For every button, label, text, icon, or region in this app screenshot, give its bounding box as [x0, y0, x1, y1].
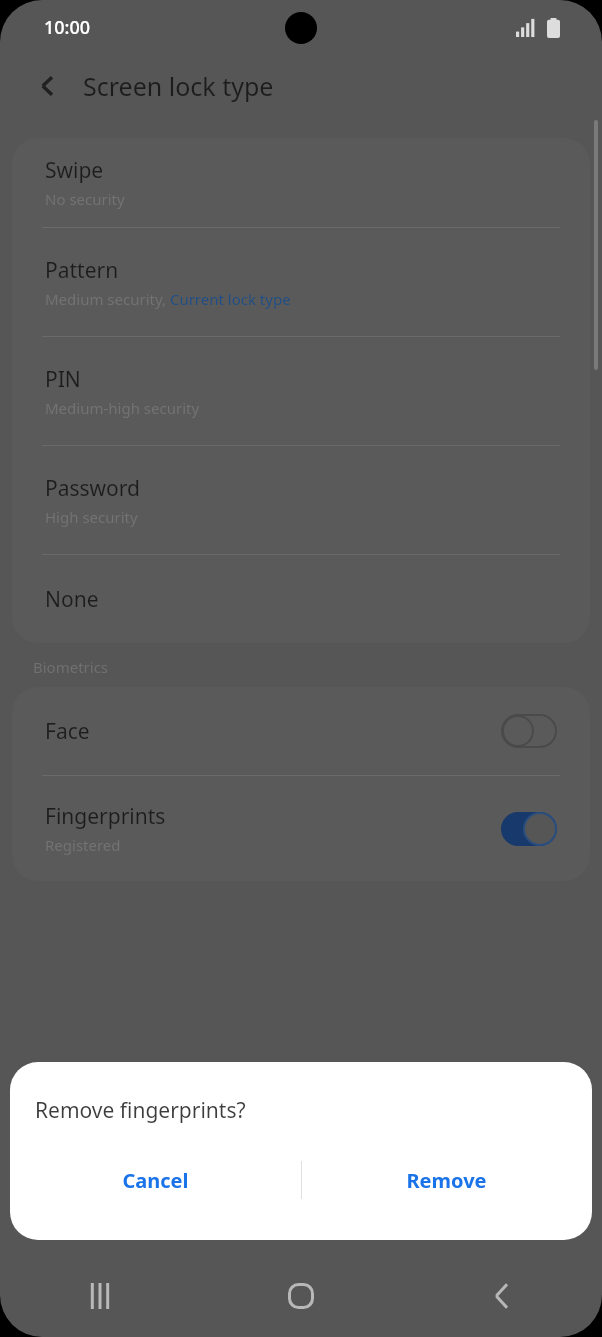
- button[interactable]: Toggle off: [501, 714, 557, 748]
- staticText: Medium security, Current lock type: [45, 289, 291, 309]
- button[interactable]: Home: [200, 1255, 401, 1337]
- button[interactable]: Fingerprints: [12, 776, 590, 881]
- button[interactable]: Swipe: [12, 138, 590, 227]
- staticText: Pattern: [45, 256, 119, 285]
- button[interactable]: Cancel: [10, 1142, 301, 1218]
- button[interactable]: None: [12, 555, 590, 643]
- staticText: Cancel: [122, 1167, 189, 1194]
- staticText: Biometrics: [33, 657, 109, 677]
- button[interactable]: Toggle on: [501, 812, 557, 846]
- button[interactable]: Back: [26, 64, 70, 108]
- staticText: None: [45, 585, 99, 614]
- button[interactable]: PIN: [12, 337, 590, 445]
- button[interactable]: Remove: [301, 1142, 592, 1218]
- staticText: No security: [45, 189, 125, 209]
- staticText: PIN: [45, 365, 81, 394]
- button[interactable]: Pattern: [12, 228, 590, 336]
- button[interactable]: Back: [401, 1255, 602, 1337]
- staticText: Face: [45, 717, 90, 746]
- staticText: Fingerprints: [45, 802, 166, 831]
- staticText: Medium-high security: [45, 398, 200, 418]
- staticText: 10:00: [44, 15, 91, 40]
- staticText: High security: [45, 507, 138, 527]
- staticText: Remove: [406, 1167, 487, 1194]
- staticText: Swipe: [45, 156, 104, 185]
- staticText: Remove fingerprints?: [35, 1096, 246, 1125]
- staticText: Screen lock type: [83, 69, 274, 103]
- button[interactable]: Recents: [0, 1255, 200, 1337]
- button[interactable]: Face: [12, 687, 590, 775]
- staticText: Registered: [45, 835, 121, 855]
- button[interactable]: Password: [12, 446, 590, 554]
- staticText: Password: [45, 474, 140, 503]
